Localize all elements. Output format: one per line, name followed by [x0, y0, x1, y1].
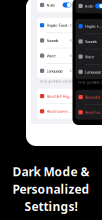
staticText: Language — [85, 69, 101, 74]
staticText: Voice guidance uses device language. — [78, 81, 102, 84]
button[interactable]: Reset Game Ads — [75, 105, 102, 120]
staticText: Dark Mode & — [12, 164, 89, 179]
button[interactable]: Reset Game Ads — [37, 104, 74, 119]
staticText: Settings! — [24, 198, 77, 214]
staticText: Sounds — [47, 38, 59, 43]
staticText: Reset All High Scores — [47, 93, 71, 99]
button[interactable]: Voice — [37, 48, 74, 63]
button[interactable]: Reset All High Scores — [37, 89, 74, 103]
staticText: Reset All High Scores — [85, 94, 102, 100]
staticText: Personalized — [12, 181, 89, 197]
button[interactable]: Haptic Feedback — [37, 18, 74, 33]
staticText: Auto — [47, 2, 55, 8]
staticText: Voice — [47, 53, 56, 58]
staticText: Language — [47, 68, 63, 73]
staticText: Haptic Feedback — [85, 24, 102, 29]
staticText: Haptic Feedback — [47, 23, 70, 28]
button[interactable]: Sounds — [37, 33, 74, 48]
staticText: Auto — [85, 3, 93, 9]
staticText: Reset Game Ads — [47, 109, 71, 114]
button[interactable]: Haptic Feedback — [75, 19, 102, 34]
button[interactable]: Language — [37, 63, 74, 78]
staticText: Sounds — [85, 39, 97, 44]
button[interactable]: Voice — [75, 49, 102, 64]
button[interactable]: Auto — [75, 0, 102, 13]
staticText: Voice — [85, 54, 94, 59]
button[interactable]: Auto — [37, 0, 74, 12]
button[interactable]: Sounds — [75, 34, 102, 49]
button[interactable]: Language — [75, 64, 102, 79]
button[interactable]: Reset All High Scores — [75, 90, 102, 104]
staticText: Reset Game Ads — [85, 110, 102, 115]
staticText: Voice guidance uses device language. — [40, 80, 80, 83]
